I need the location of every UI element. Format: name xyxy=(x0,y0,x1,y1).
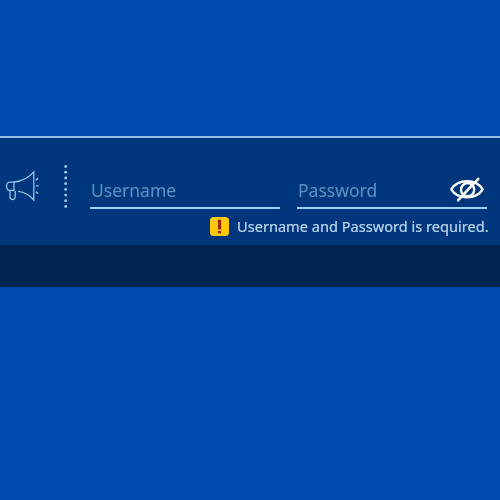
staticText: Username and Password is required. xyxy=(237,216,489,236)
button[interactable]: Announcements xyxy=(2,164,42,204)
button[interactable]: Password xyxy=(297,171,487,209)
button[interactable]: Show password xyxy=(442,166,490,206)
staticText: Username xyxy=(91,178,177,202)
staticText: Password xyxy=(298,178,378,202)
button[interactable]: Username xyxy=(90,171,280,209)
